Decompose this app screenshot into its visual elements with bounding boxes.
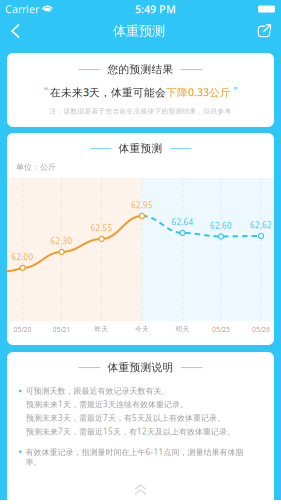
- staticText: 62.62: [250, 220, 272, 230]
- staticText: 注：该数据是基于您当前生活规律下的预测结果，仅供参考: [49, 107, 231, 115]
- staticText: 单位：公斤: [16, 162, 56, 172]
- staticText: 05/26: [252, 325, 270, 334]
- staticText: 明天: [175, 325, 189, 333]
- staticText: 您的预测结果: [107, 63, 173, 76]
- staticText: 体重预测说明: [107, 361, 173, 374]
- staticText: 体重预测: [118, 142, 162, 155]
- staticText: 下降0.33公斤: [166, 85, 231, 99]
- staticText: 可预测天数，跟最近有效记录天数有关。: [26, 386, 170, 396]
- staticText: 5:49 PM: [135, 2, 176, 16]
- staticText: 05/20: [14, 325, 32, 334]
- staticText: 有效体重记录，指测量时间在上午6-11点间，测量结果有体脂率。: [26, 447, 244, 467]
- staticText: 预测未来1天，需最近3天连续有效体重记录。: [26, 399, 188, 409]
- staticText: 预测未来3天，需最近7天，有5天及以上有效体重记录。: [26, 413, 225, 423]
- staticText: 05/25: [212, 325, 230, 334]
- staticText: ❝: [43, 85, 48, 96]
- staticText: Carrier: [5, 2, 39, 16]
- staticText: 62.55: [91, 223, 113, 233]
- staticText: 62.00: [12, 252, 34, 262]
- staticText: 体重预测: [113, 23, 165, 39]
- staticText: 62.60: [210, 220, 232, 231]
- staticText: 今天: [135, 325, 149, 333]
- staticText: 昨天: [95, 325, 109, 333]
- staticText: 62.95: [131, 200, 153, 210]
- staticText: 62.64: [171, 217, 193, 227]
- button[interactable]: Collapse: [129, 479, 152, 502]
- button[interactable]: Back: [3, 18, 28, 43]
- staticText: ❞: [233, 85, 238, 96]
- staticText: 预测未来7天，需最近15天，有12天及以上有效体重记录。: [26, 426, 235, 437]
- staticText: 在未来3天，体重可能会: [50, 85, 166, 99]
- staticText: 62.30: [51, 236, 73, 246]
- button[interactable]: Share: [250, 19, 278, 43]
- staticText: 05/21: [53, 325, 71, 334]
